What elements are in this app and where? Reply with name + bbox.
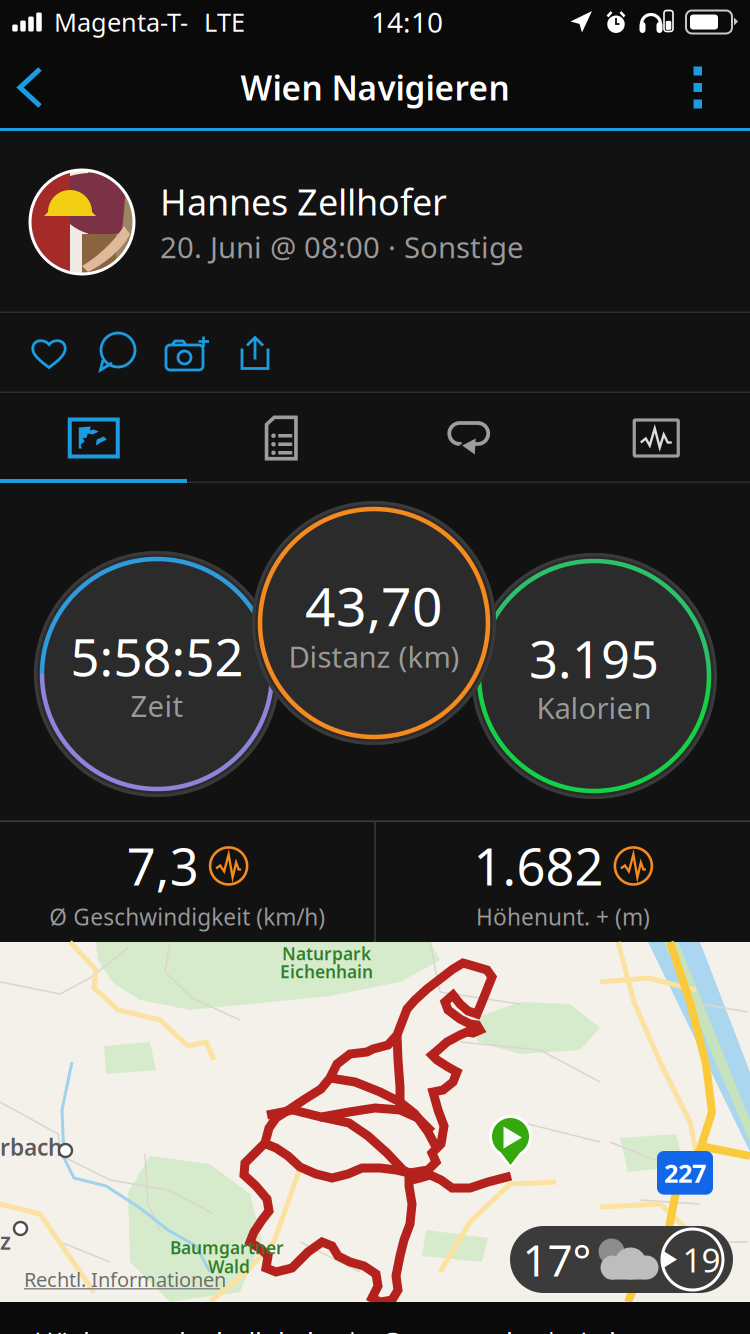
staticText: 43,70 — [305, 570, 443, 641]
staticText: Höchstgeschwindigkeit | Gesamtzeit | Lei… — [34, 1325, 687, 1334]
staticText: 227 — [664, 1156, 706, 1190]
staticText: 19 — [682, 1237, 720, 1282]
staticText: Kalorien — [536, 688, 651, 727]
staticText: z — [0, 1226, 11, 1256]
button[interactable]: Back — [0, 46, 65, 128]
staticText: 3.195 — [529, 625, 659, 692]
staticText: Höhenunt. + (m) — [476, 902, 650, 932]
staticText: Zeit — [130, 686, 183, 725]
staticText: 14:10 — [371, 3, 443, 41]
staticText: LTE — [204, 5, 245, 39]
button[interactable]: Analysis — [562, 393, 750, 483]
staticText: Wien Navigieren — [240, 65, 509, 110]
staticText: Hannes Zellhofer — [160, 178, 447, 225]
staticText: Wald — [208, 1255, 250, 1278]
staticText: Ø Geschwindigkeit (km/h) — [49, 902, 325, 932]
button[interactable]: Add photo — [154, 323, 222, 383]
staticText: Naturpark — [282, 942, 371, 965]
staticText: 17° — [522, 1230, 591, 1289]
staticText: 5:58:52 — [70, 623, 243, 690]
staticText: Magenta-T- — [54, 5, 188, 39]
button[interactable]: Share — [222, 323, 288, 383]
button[interactable]: Details — [187, 393, 375, 483]
staticText: 1.682 — [473, 832, 603, 900]
button[interactable]: Like — [16, 324, 82, 382]
staticText: Baumgartner — [170, 1236, 284, 1259]
staticText: 7,3 — [127, 832, 199, 900]
staticText: Eichenhain — [280, 960, 373, 983]
button[interactable]: Map — [0, 393, 187, 483]
button[interactable]: More options — [667, 46, 750, 128]
button[interactable]: Comment — [82, 323, 154, 383]
staticText: Rechtl. Informationen — [24, 1266, 226, 1293]
button[interactable]: Laps — [375, 393, 562, 483]
staticText: 20. Juni @ 08:00 · Sonstige — [160, 227, 524, 266]
staticText: rbach — [0, 1132, 62, 1162]
staticText: Distanz (km) — [288, 637, 459, 676]
